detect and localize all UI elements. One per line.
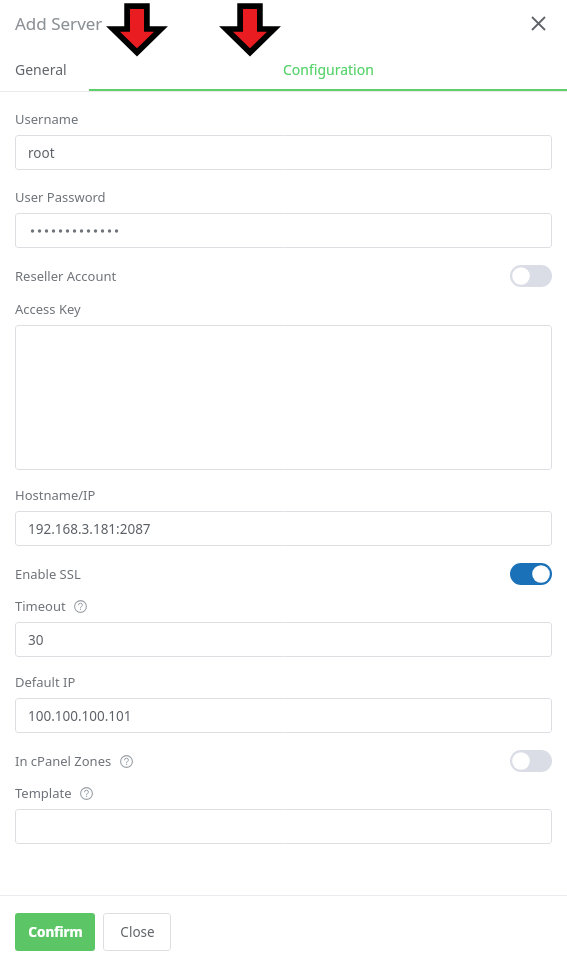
staticText: Username	[15, 110, 79, 128]
staticText: 30	[28, 631, 44, 649]
button[interactable]: In cPanel Zones	[510, 750, 552, 772]
button[interactable]: root	[15, 135, 552, 170]
button[interactable]: Enable SSL	[510, 563, 552, 585]
staticText: User Password	[15, 188, 106, 206]
staticText: Add Server	[15, 12, 103, 35]
staticText: Hostname/IP	[15, 486, 96, 504]
staticText: Close	[120, 923, 155, 941]
staticText: 100.100.100.101	[28, 707, 132, 725]
staticText: Timeout	[15, 597, 66, 615]
button[interactable]: Confirm	[15, 913, 95, 951]
staticText: Confirm	[28, 923, 83, 941]
staticText: General	[15, 60, 67, 79]
staticText: root	[28, 144, 55, 162]
button[interactable]: Configuration	[89, 46, 567, 92]
staticText: In cPanel Zones	[15, 752, 112, 770]
staticText: Access Key	[15, 300, 81, 318]
button[interactable]: Close	[103, 913, 171, 951]
button[interactable]: Reseller Account	[510, 265, 552, 287]
button[interactable]: 100.100.100.101	[15, 698, 552, 733]
staticText: 192.168.3.181:2087	[28, 520, 151, 538]
button[interactable]	[15, 809, 552, 844]
button[interactable]: 30	[15, 622, 552, 657]
staticText: Default IP	[15, 673, 76, 691]
button[interactable]: General	[11, 46, 71, 92]
staticText: Enable SSL	[15, 565, 81, 583]
staticText: Template	[15, 784, 72, 802]
button[interactable]	[15, 213, 552, 248]
staticText: Reseller Account	[15, 267, 117, 285]
button[interactable]	[15, 325, 552, 470]
button[interactable]: Close	[525, 10, 551, 36]
staticText: Configuration	[283, 60, 374, 79]
button[interactable]: 192.168.3.181:2087	[15, 511, 552, 546]
